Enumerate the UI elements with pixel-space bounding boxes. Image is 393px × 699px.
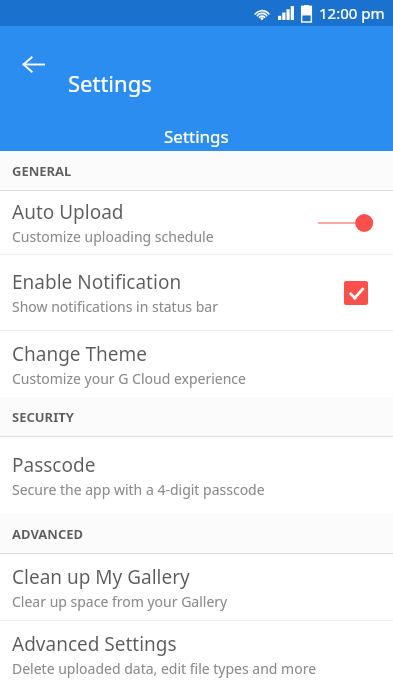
staticText: Show notifications in status bar — [12, 297, 218, 316]
staticText: Auto Upload — [12, 199, 124, 225]
staticText: Customize uploading schedule — [12, 227, 214, 246]
staticText: Passcode — [12, 452, 96, 478]
staticText: GENERAL — [12, 162, 72, 180]
staticText: SECURITY — [12, 408, 74, 426]
button[interactable]: Clean up My Gallery — [0, 554, 393, 620]
button[interactable]: Auto Upload switch, on — [313, 205, 377, 241]
staticText: Customize your G Cloud experience — [12, 369, 246, 388]
button[interactable]: Auto Upload — [0, 191, 393, 254]
button[interactable]: Enable Notification — [0, 255, 393, 330]
button[interactable]: Enable Notification checkbox, checked — [335, 272, 377, 314]
staticText: ADVANCED — [12, 525, 84, 543]
button[interactable]: Advanced Settings — [0, 621, 393, 687]
staticText: Settings — [68, 68, 152, 98]
staticText: Secure the app with a 4-digit passcode — [12, 480, 265, 499]
staticText: Clean up My Gallery — [12, 564, 190, 590]
button[interactable]: Back — [11, 42, 55, 86]
button[interactable]: Settings — [0, 121, 393, 151]
staticText: 12:00 pm — [319, 3, 385, 23]
staticText: Delete uploaded data, edit file types an… — [12, 659, 317, 678]
staticText: Settings — [164, 125, 229, 148]
staticText: Enable Notification — [12, 269, 182, 295]
staticText: Clear up space from your Gallery — [12, 592, 228, 611]
button[interactable]: Passcode — [0, 437, 393, 514]
button[interactable]: Change Theme — [0, 331, 393, 397]
staticText: Change Theme — [12, 341, 147, 367]
staticText: Advanced Settings — [12, 631, 177, 657]
